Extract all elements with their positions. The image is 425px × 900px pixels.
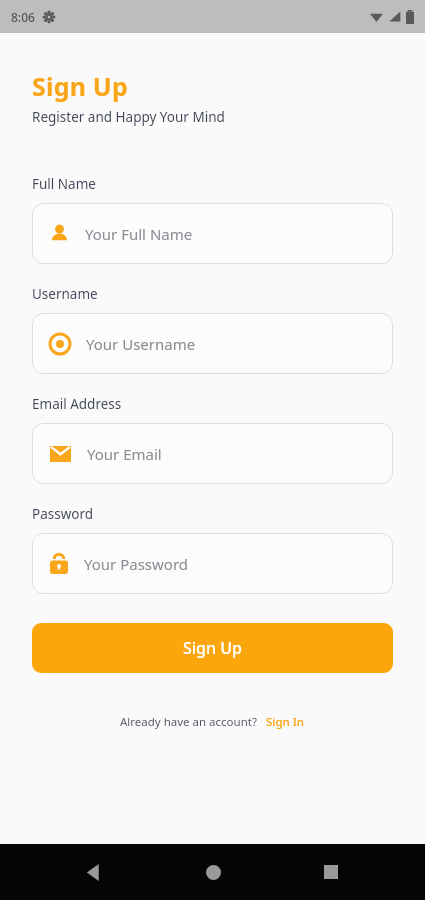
- button[interactable]: Sign Up: [32, 623, 393, 673]
- other: Password: [50, 553, 68, 574]
- button[interactable]: Sign In: [266, 714, 305, 730]
- staticText: Your Email: [87, 444, 162, 464]
- button[interactable]: Username: [32, 313, 393, 374]
- other: Username: [50, 334, 70, 354]
- staticText: Sign Up: [32, 69, 128, 103]
- staticText: Username: [32, 285, 98, 303]
- other: Email: [50, 446, 71, 462]
- staticText: Email Address: [32, 395, 122, 413]
- button[interactable]: Back: [70, 848, 118, 896]
- button[interactable]: Email: [32, 423, 393, 484]
- staticText: Password: [32, 505, 94, 523]
- button[interactable]: Full name: [32, 203, 393, 264]
- staticText: Already have an account?: [120, 714, 257, 730]
- staticText: Your Full Name: [85, 224, 193, 244]
- staticText: Your Username: [86, 334, 196, 354]
- staticText: Full Name: [32, 175, 96, 193]
- button[interactable]: Home: [189, 848, 237, 896]
- staticText: Register and Happy Your Mind: [32, 108, 225, 126]
- other: Full name: [50, 224, 69, 243]
- button[interactable]: Password: [32, 533, 393, 594]
- staticText: Sign Up: [183, 637, 242, 659]
- staticText: 8:06: [11, 9, 35, 25]
- button[interactable]: Recents: [307, 848, 355, 896]
- staticText: Sign In: [266, 714, 305, 730]
- staticText: Your Password: [84, 554, 189, 574]
